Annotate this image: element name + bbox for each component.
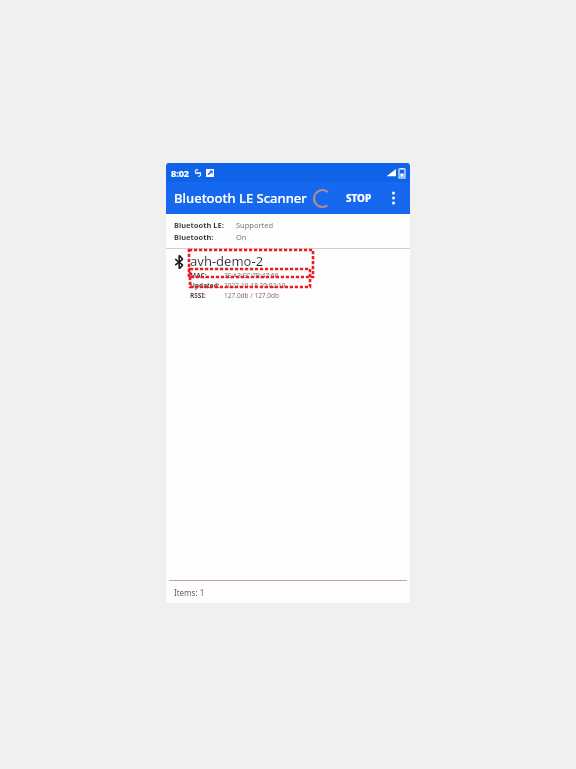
staticText: Supported [236, 220, 274, 230]
button[interactable]: avh-demo-2 [166, 249, 410, 304]
other: Scanning [309, 185, 335, 211]
staticText: Bluetooth: [174, 232, 214, 242]
staticText: MAC: [190, 271, 207, 280]
button[interactable]: More options [380, 185, 406, 211]
staticText: Bluetooth LE Scanner [174, 189, 307, 207]
staticText: Items: 1 [174, 587, 205, 598]
staticText: 127.0db / 127.0db [224, 291, 280, 300]
button[interactable]: STOP [341, 185, 377, 211]
staticText: Updated: [190, 281, 220, 290]
staticText: Bluetooth LE: [174, 220, 224, 230]
staticText: avh-demo-2 [190, 252, 264, 270]
staticText: 8:02 [171, 167, 189, 179]
staticText: STOP [346, 191, 372, 205]
staticText: RSSI: [190, 291, 206, 300]
staticText: On [236, 232, 247, 242]
staticText: 2022-10-18 20:02:19 [224, 281, 286, 290]
staticText: 3E:A3:EC:7B:47:66 [224, 271, 279, 280]
